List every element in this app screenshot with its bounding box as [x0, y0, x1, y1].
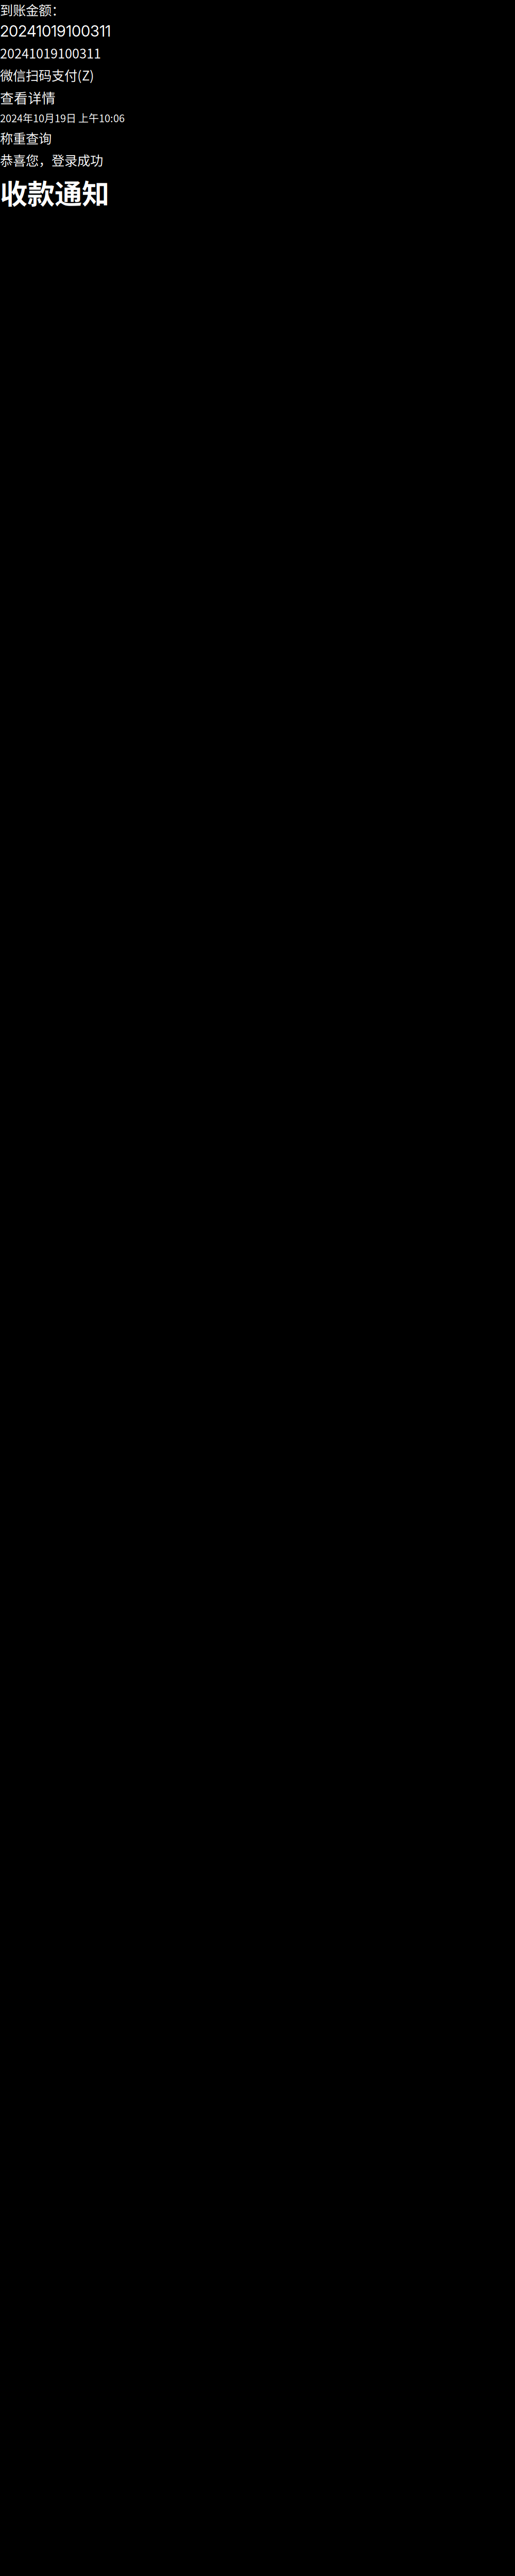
staticText: 2024年10月19日 上午10:06	[0, 110, 125, 125]
staticText: 20241019100311	[0, 22, 111, 40]
staticText: 到账金额：	[0, 0, 64, 19]
staticText: 称重查询	[0, 128, 51, 147]
staticText: 微信扫码支付(Z)	[0, 65, 94, 84]
staticText: 恭喜您，登录成功	[0, 150, 103, 169]
staticText: 20241019100311	[0, 43, 101, 62]
staticText: 查看详情	[0, 87, 56, 107]
staticText: 收款通知	[0, 172, 109, 212]
